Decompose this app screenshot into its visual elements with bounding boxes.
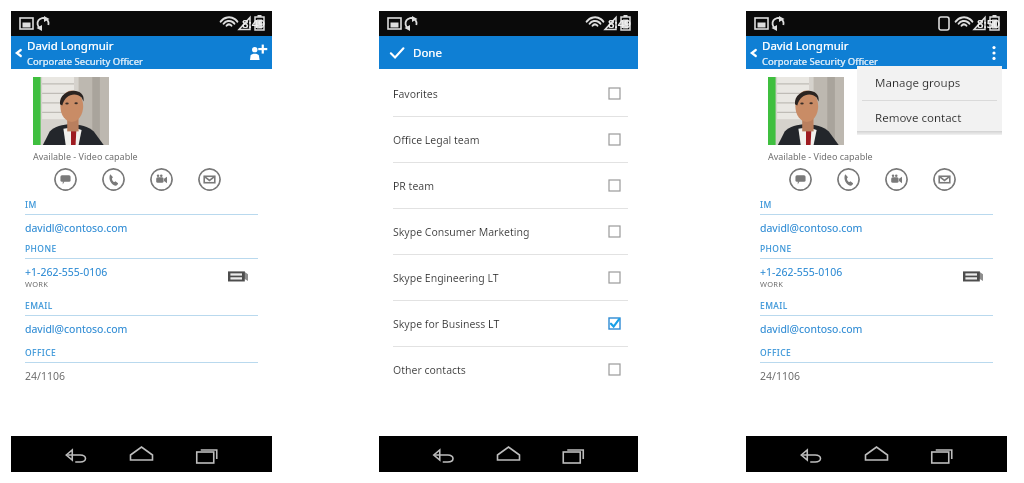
staticText: Favorites (393, 87, 438, 101)
staticText: Remove contact (875, 110, 962, 126)
button[interactable]: Skype for Business LT (379, 301, 638, 347)
button[interactable]: Add contact (242, 36, 272, 69)
button[interactable]: PR team (379, 163, 638, 209)
staticText: 24/1106 (25, 369, 65, 383)
staticText: Available - Video capable (768, 150, 873, 162)
staticText: Office Legal team (393, 133, 480, 147)
staticText: Skype for Business LT (393, 317, 500, 331)
staticText: David Longmuir (762, 38, 849, 54)
staticText: Other contacts (393, 363, 466, 377)
staticText: Skype Engineering LT (393, 271, 499, 285)
button[interactable]: Skype Consumer Marketing (379, 209, 638, 255)
button[interactable]: Send email (933, 168, 956, 191)
staticText: davidl@contoso.com (25, 322, 128, 336)
other: Keypad (963, 270, 983, 284)
staticText: davidl@contoso.com (25, 221, 128, 235)
staticText: EMAIL (760, 300, 788, 312)
staticText: IM (760, 199, 772, 211)
button[interactable]: Send instant message (789, 168, 812, 191)
button[interactable]: 24/1106 (25, 369, 258, 383)
button[interactable]: davidl@contoso.com (760, 322, 993, 336)
staticText: 24/1106 (760, 369, 800, 383)
button[interactable]: Done (379, 36, 638, 69)
staticText: WORK (25, 279, 49, 289)
staticText: 8:50 (977, 16, 1000, 32)
button[interactable]: Manage groups (857, 66, 1002, 100)
button[interactable]: davidl@contoso.com (25, 322, 258, 336)
button[interactable]: Video call (885, 168, 908, 191)
other: Keypad (228, 270, 248, 284)
button[interactable]: Office Legal team (379, 117, 638, 163)
staticText: Manage groups (875, 75, 961, 91)
button[interactable]: +1-262-555-0106 (25, 265, 258, 289)
staticText: Skype Consumer Marketing (393, 225, 530, 239)
staticText: Corporate Security Officer (762, 55, 878, 68)
staticText: +1-262-555-0106 (760, 265, 843, 279)
button[interactable]: davidl@contoso.com (760, 221, 993, 235)
button[interactable]: Call (102, 168, 125, 191)
button[interactable]: More options (981, 36, 1007, 69)
staticText: David Longmuir (27, 38, 114, 54)
staticText: Corporate Security Officer (27, 55, 143, 68)
staticText: 8:49 (608, 16, 631, 32)
button[interactable]: 24/1106 (760, 369, 993, 383)
button[interactable]: Back (11, 36, 27, 69)
staticText: WORK (760, 279, 784, 289)
button[interactable]: Send email (198, 168, 221, 191)
button[interactable]: Remove contact (857, 101, 1002, 135)
staticText: OFFICE (25, 347, 57, 359)
button[interactable]: Favorites (379, 71, 638, 117)
staticText: davidl@contoso.com (760, 221, 863, 235)
button[interactable]: Skype Engineering LT (379, 255, 638, 301)
staticText: 8:49 (242, 16, 265, 32)
staticText: Available - Video capable (33, 150, 138, 162)
button[interactable]: Other contacts (379, 347, 638, 392)
staticText: EMAIL (25, 300, 53, 312)
staticText: IM (25, 199, 37, 211)
button[interactable]: Back (746, 36, 762, 69)
staticText: Done (413, 45, 442, 61)
staticText: +1-262-555-0106 (25, 265, 108, 279)
button[interactable]: Video call (150, 168, 173, 191)
staticText: PHONE (25, 243, 57, 255)
button[interactable]: davidl@contoso.com (25, 221, 258, 235)
button[interactable]: Call (837, 168, 860, 191)
staticText: OFFICE (760, 347, 792, 359)
staticText: davidl@contoso.com (760, 322, 863, 336)
staticText: PR team (393, 179, 435, 193)
button[interactable]: Send instant message (54, 168, 77, 191)
button[interactable]: +1-262-555-0106 (760, 265, 993, 289)
staticText: PHONE (760, 243, 792, 255)
